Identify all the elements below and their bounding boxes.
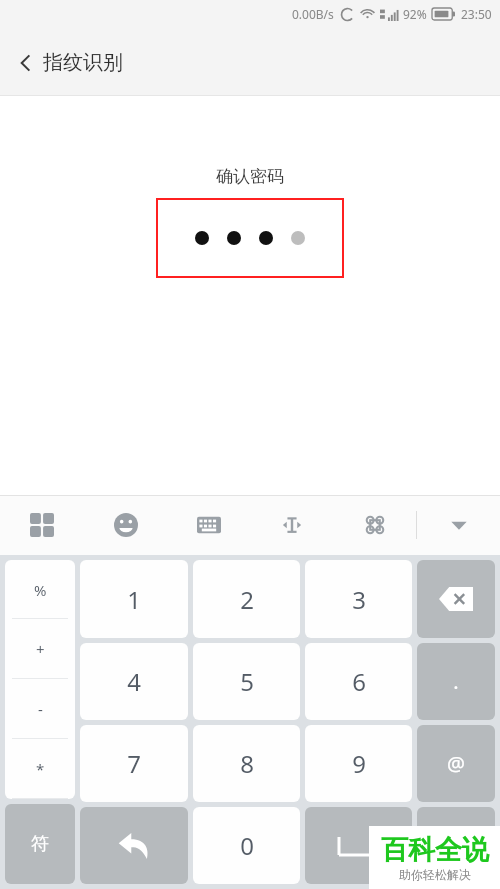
button[interactable]: Return — [80, 807, 188, 884]
staticText: 8 — [240, 747, 254, 780]
button[interactable]: 0 — [193, 807, 300, 884]
staticText: 23:50 — [461, 6, 492, 22]
button[interactable]: Backspace — [417, 560, 495, 638]
button[interactable]: - — [5, 679, 75, 739]
button[interactable]: 7 — [80, 725, 188, 802]
button[interactable]: Space — [305, 807, 412, 884]
button[interactable] — [156, 198, 344, 278]
button[interactable]: 9 — [305, 725, 412, 802]
button[interactable]: 1 — [80, 560, 188, 638]
staticText: 2 — [240, 583, 254, 616]
button[interactable]: 2 — [193, 560, 300, 638]
button[interactable]: 8 — [193, 725, 300, 802]
staticText: 5 — [240, 665, 254, 698]
staticText: 4 — [127, 665, 141, 698]
button[interactable]: 5 — [193, 643, 300, 720]
staticText: 7 — [127, 747, 141, 780]
button[interactable]: Emoji — [84, 495, 167, 555]
button[interactable]: 6 — [305, 643, 412, 720]
button[interactable]: % — [5, 560, 75, 619]
button[interactable]: . — [417, 643, 495, 720]
staticText: 百科全说 — [381, 833, 489, 867]
button[interactable]: 指纹识别 — [14, 44, 129, 81]
button[interactable]: Keyboard layouts — [0, 495, 84, 555]
staticText: * — [36, 759, 45, 779]
staticText: - — [38, 699, 43, 719]
button[interactable]: More — [417, 807, 495, 884]
button[interactable]: Shortcuts — [333, 495, 416, 555]
button[interactable]: Move cursor — [250, 495, 333, 555]
button[interactable]: Keyboard — [167, 495, 250, 555]
staticText: 92% — [403, 6, 427, 22]
staticText: 1 — [127, 583, 141, 616]
staticText: 助你轻松解决 — [399, 867, 471, 882]
button[interactable]: 符 — [5, 804, 75, 884]
staticText: % — [34, 580, 47, 600]
button[interactable]: * — [5, 739, 75, 799]
button[interactable]: + — [5, 619, 75, 679]
staticText: 3 — [352, 583, 366, 616]
staticText: 0.00B/s — [292, 6, 334, 22]
staticText: 确认密码 — [216, 166, 284, 187]
button[interactable]: @ — [417, 725, 495, 802]
button[interactable]: 4 — [80, 643, 188, 720]
staticText: . — [453, 668, 459, 695]
staticText: + — [36, 639, 45, 659]
staticText: 6 — [352, 665, 366, 698]
button[interactable]: 3 — [305, 560, 412, 638]
button[interactable]: Hide keyboard — [417, 495, 500, 555]
staticText: 符 — [31, 833, 49, 856]
staticText: @ — [447, 750, 465, 777]
staticText: 9 — [352, 747, 366, 780]
staticText: 指纹识别 — [43, 50, 123, 75]
staticText: 0 — [240, 829, 254, 862]
